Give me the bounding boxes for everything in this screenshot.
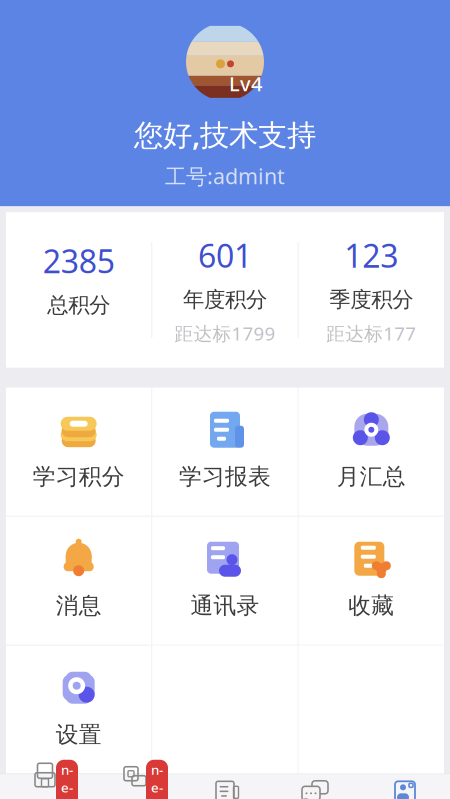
staticText: 距达标1799 xyxy=(174,321,275,346)
staticText: 123 xyxy=(344,234,398,277)
button[interactable]: 601 xyxy=(152,212,298,368)
staticText: 收藏 xyxy=(348,592,394,619)
button[interactable]: new xyxy=(90,773,180,799)
button[interactable]: 我的 xyxy=(360,773,450,799)
button[interactable]: 月汇总 xyxy=(299,391,444,512)
button[interactable]: 消息 xyxy=(6,520,151,641)
staticText: 您好,技术支持 xyxy=(134,115,316,154)
button[interactable]: 学习积分 xyxy=(6,391,151,512)
staticText: 工号:admint xyxy=(165,162,285,190)
button[interactable]: 123 xyxy=(299,212,444,368)
staticText: 距达标177 xyxy=(326,321,416,346)
button[interactable]: 论坛 xyxy=(270,773,360,799)
button[interactable]: 学习报表 xyxy=(152,391,298,512)
staticText: 通讯录 xyxy=(190,592,259,619)
staticText: 设置 xyxy=(56,721,102,748)
button[interactable]: 设置 xyxy=(6,649,151,770)
staticText: 消息 xyxy=(56,592,102,619)
staticText: 总积分 xyxy=(47,292,110,318)
staticText: new xyxy=(61,761,73,799)
staticText: 601 xyxy=(198,234,252,277)
staticText: 学习报表 xyxy=(179,463,271,490)
staticText: 月汇总 xyxy=(337,463,406,490)
staticText: new xyxy=(151,761,163,799)
staticText: 学习积分 xyxy=(33,463,125,490)
button[interactable]: 2385 xyxy=(6,217,151,362)
staticText: Lv4 xyxy=(229,70,262,97)
button[interactable]: 收藏 xyxy=(299,520,444,641)
button[interactable]: 通讯录 xyxy=(152,520,298,641)
staticText: 年度积分 xyxy=(183,287,267,313)
button[interactable]: 考核 xyxy=(180,773,270,799)
button[interactable]: new xyxy=(0,773,90,799)
staticText: 季度积分 xyxy=(329,287,413,313)
staticText: 2385 xyxy=(43,239,115,282)
